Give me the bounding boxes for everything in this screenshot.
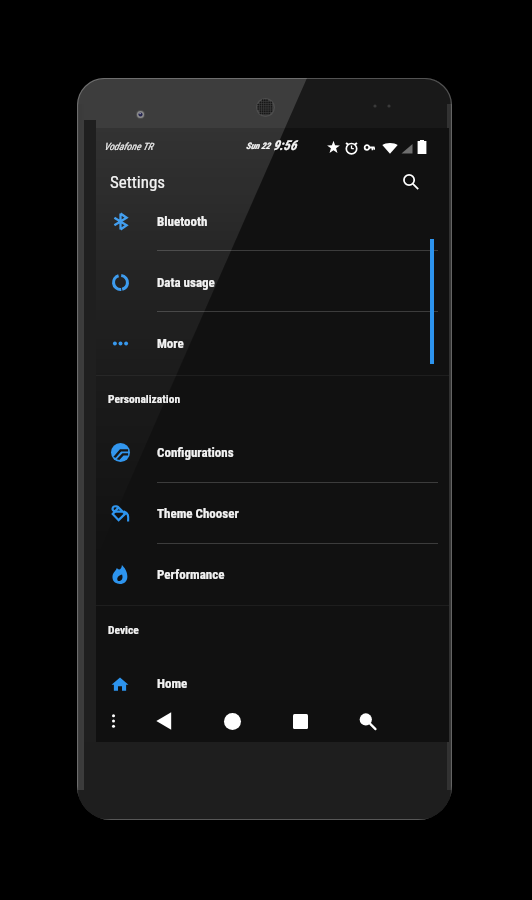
button[interactable]: Configurations — [96, 422, 449, 483]
staticText: Device — [108, 623, 139, 636]
staticText: Sun 22 — [246, 141, 273, 152]
staticText: Settings — [110, 172, 166, 192]
staticText: Personalization — [108, 392, 181, 405]
staticText: Vodafone TR — [104, 141, 154, 153]
staticText: Bluetooth — [157, 214, 208, 229]
staticText: 9:56 — [273, 137, 297, 153]
staticText: Data usage — [157, 275, 215, 290]
staticText: Theme Chooser — [157, 506, 239, 521]
button[interactable]: Recents — [282, 700, 318, 742]
staticText: Configurations — [157, 445, 234, 460]
staticText: Home — [157, 676, 188, 691]
button[interactable]: Data usage — [96, 252, 449, 313]
staticText: More — [157, 336, 184, 351]
button[interactable]: Home — [214, 700, 250, 742]
button[interactable]: Performance — [96, 544, 449, 605]
button[interactable]: Search — [349, 700, 385, 742]
button[interactable]: Search — [395, 166, 427, 198]
button[interactable]: Bluetooth — [96, 191, 449, 252]
button[interactable]: Home — [96, 653, 449, 714]
staticText: Performance — [157, 567, 225, 582]
button[interactable]: Back — [146, 700, 182, 742]
button[interactable]: Menu — [97, 700, 129, 742]
button[interactable]: Theme Chooser — [96, 483, 449, 544]
button[interactable]: More — [96, 313, 449, 374]
